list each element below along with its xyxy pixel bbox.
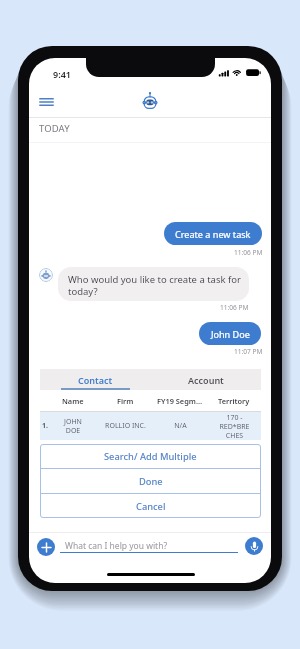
staticText: Contact	[78, 374, 113, 386]
staticText: 11:06 PM	[220, 303, 249, 312]
staticText: 9:41	[53, 68, 71, 80]
button[interactable]: Search/ Add Multiple	[40, 444, 261, 468]
button[interactable]: Who would you like to create a task for …	[58, 267, 249, 301]
staticText: Name	[62, 396, 84, 406]
staticText: TODAY	[39, 122, 70, 135]
staticText: Firm	[117, 396, 134, 406]
button[interactable]: Einstein assistant	[140, 89, 160, 111]
staticText: N/A	[174, 421, 187, 431]
staticText: Territory	[218, 396, 250, 406]
button[interactable]: 1.	[40, 412, 261, 440]
button[interactable]: Cancel	[40, 494, 261, 518]
staticText: ROLLIO INC.	[105, 421, 146, 431]
staticText: John Doe	[211, 328, 250, 340]
button[interactable]: Menu	[35, 90, 58, 113]
staticText: Who would you like to create a task for …	[68, 273, 241, 298]
staticText: Done	[139, 475, 163, 488]
button[interactable]: John Doe	[199, 322, 261, 345]
button[interactable]: Contact	[40, 369, 150, 390]
staticText: Cancel	[136, 500, 166, 513]
staticText: 11:07 PM	[234, 347, 263, 356]
staticText: What can I help you with?	[65, 540, 168, 552]
button[interactable]: Create a new task	[164, 222, 262, 245]
staticText: 11:06 PM	[234, 248, 263, 257]
staticText: 1.	[42, 421, 48, 431]
button[interactable]: Done	[40, 469, 261, 493]
button[interactable]: Account	[150, 369, 261, 390]
staticText: Search/ Add Multiple	[104, 450, 197, 463]
staticText: 170 - RED*BRE CHES	[219, 413, 250, 440]
staticText: FY19 Segm…	[157, 396, 203, 406]
staticText: JOHN DOE	[64, 417, 82, 435]
staticText: Create a new task	[175, 228, 251, 240]
staticText: Account	[188, 374, 224, 386]
button[interactable]: Add	[37, 538, 55, 556]
button[interactable]: Voice input	[245, 537, 263, 555]
